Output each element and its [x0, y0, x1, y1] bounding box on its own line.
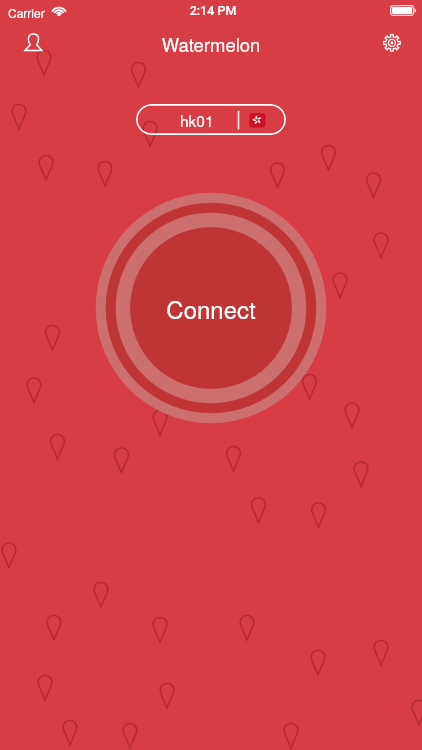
- button[interactable]: hk01: [136, 104, 286, 135]
- staticText: Connect: [166, 291, 256, 325]
- button[interactable]: Connect: [130, 227, 292, 389]
- staticText: Watermelon: [0, 31, 422, 57]
- button[interactable]: Account: [11, 20, 55, 64]
- staticText: Carrier: [8, 4, 45, 21]
- staticText: 2:14 PM: [2, 3, 422, 18]
- staticText: hk01: [180, 109, 214, 131]
- button[interactable]: Settings: [370, 21, 414, 65]
